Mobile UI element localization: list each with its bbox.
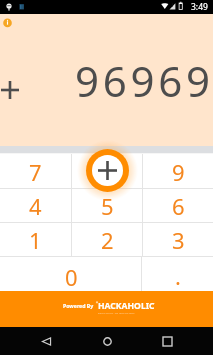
button[interactable]: 4 — [0, 189, 71, 223]
staticText: Powered By — [63, 302, 94, 309]
staticText: 3 — [172, 225, 185, 255]
button[interactable]: Info — [0, 15, 15, 30]
button[interactable]: Home — [92, 327, 122, 355]
staticText: 3:49 — [191, 1, 208, 13]
staticText: 0 — [65, 262, 78, 292]
button[interactable]: 9 — [143, 154, 213, 189]
button[interactable]: 5 — [72, 189, 142, 223]
staticText: 8 — [101, 157, 114, 187]
button[interactable]: Add — [77, 140, 138, 201]
button[interactable]: Recent apps — [152, 327, 182, 355]
button[interactable]: 1 — [0, 223, 71, 257]
staticText: 5 — [101, 191, 114, 221]
button[interactable]: . — [142, 257, 213, 291]
staticText: . — [175, 261, 181, 291]
button[interactable]: 8 — [72, 154, 142, 189]
staticText: HACKAHOLIC — [98, 300, 155, 312]
staticText: 4 — [29, 191, 42, 221]
button[interactable]: 0 — [0, 257, 141, 291]
staticText: 96969 — [75, 52, 213, 109]
button[interactable]: 3 — [143, 223, 213, 257]
staticText: 1 — [29, 225, 42, 255]
staticText: 7 — [29, 157, 42, 187]
button[interactable]: 6 — [143, 189, 213, 223]
staticText: BEAUTIFUL TO BEAUTIFUL — [98, 311, 136, 314]
button[interactable]: Back — [31, 327, 61, 355]
staticText: 6 — [172, 191, 185, 221]
button[interactable]: 2 — [72, 223, 142, 257]
button[interactable]: Advertisement — [0, 291, 213, 327]
staticText: 9 — [172, 157, 185, 187]
staticText: 2 — [101, 225, 114, 255]
button[interactable]: 7 — [0, 154, 71, 189]
